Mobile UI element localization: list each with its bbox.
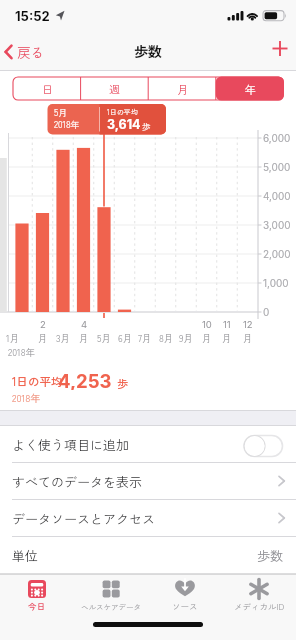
staticText: 月 bbox=[222, 331, 232, 345]
button[interactable] bbox=[238, 430, 288, 460]
button[interactable] bbox=[0, 574, 74, 624]
button[interactable] bbox=[264, 36, 296, 68]
staticText: メディカルID bbox=[234, 600, 285, 612]
staticText: 歩 bbox=[117, 375, 128, 391]
staticText: 11 bbox=[223, 319, 231, 330]
staticText: 月 bbox=[202, 331, 212, 345]
staticText: 2 bbox=[40, 319, 46, 330]
staticText: 10 bbox=[202, 319, 212, 330]
staticText: 今日 bbox=[28, 600, 46, 612]
staticText: 3,614 bbox=[107, 117, 141, 132]
staticText: 月 bbox=[79, 331, 89, 345]
staticText: 5月 bbox=[97, 331, 111, 345]
button[interactable] bbox=[148, 77, 216, 100]
staticText: 週 bbox=[109, 81, 120, 97]
staticText: 7月 bbox=[138, 331, 152, 345]
staticText: 8月 bbox=[159, 331, 174, 345]
staticText: ヘルスケアデータ bbox=[81, 601, 141, 612]
staticText: 歩数 bbox=[134, 41, 162, 61]
button[interactable] bbox=[0, 425, 296, 462]
staticText: 月 bbox=[243, 331, 253, 345]
button[interactable] bbox=[81, 77, 149, 100]
staticText: よく使う項目に追加 bbox=[12, 435, 130, 454]
staticText: 4 bbox=[81, 319, 88, 330]
button[interactable] bbox=[0, 499, 296, 536]
staticText: 2018年 bbox=[8, 345, 35, 359]
button[interactable] bbox=[148, 574, 222, 624]
staticText: 2,000 bbox=[263, 248, 291, 260]
staticText: 1日の平均 bbox=[107, 107, 138, 117]
staticText: 歩数 bbox=[257, 546, 284, 565]
staticText: 5月 bbox=[54, 106, 68, 119]
staticText: すべてのデータを表示 bbox=[12, 472, 143, 491]
staticText: 2018年 bbox=[12, 390, 41, 404]
staticText: 12 bbox=[243, 319, 253, 330]
button[interactable] bbox=[13, 77, 81, 100]
button[interactable] bbox=[216, 77, 284, 100]
staticText: 4,000 bbox=[263, 190, 291, 202]
staticText: 3,000 bbox=[263, 219, 291, 231]
staticText: 5,000 bbox=[263, 161, 291, 173]
staticText: 1,000 bbox=[263, 277, 289, 289]
staticText: 1月 bbox=[6, 331, 20, 345]
staticText: 戻る bbox=[17, 42, 44, 62]
staticText: 日 bbox=[42, 81, 53, 97]
staticText: 6月 bbox=[118, 331, 133, 345]
button[interactable] bbox=[0, 36, 60, 68]
staticText: 15:52 bbox=[15, 8, 50, 24]
staticText: 単位 bbox=[12, 546, 39, 565]
button[interactable] bbox=[74, 574, 148, 624]
staticText: 歩 bbox=[142, 120, 151, 132]
staticText: 9月 bbox=[179, 331, 194, 345]
button[interactable] bbox=[222, 574, 296, 624]
staticText: 月 bbox=[177, 81, 188, 97]
staticText: 3月 bbox=[56, 331, 71, 345]
staticText: 1日の平均 bbox=[12, 373, 63, 390]
staticText: 6,000 bbox=[263, 132, 291, 144]
staticText: 月 bbox=[38, 331, 48, 345]
button[interactable] bbox=[0, 536, 296, 574]
button[interactable] bbox=[0, 462, 296, 499]
staticText: ソース bbox=[172, 600, 198, 612]
staticText: データソースとアクセス bbox=[12, 509, 156, 528]
staticText: 4,253 bbox=[58, 370, 112, 390]
staticText: 年 bbox=[245, 81, 256, 97]
staticText: 2018年 bbox=[54, 118, 80, 131]
staticText: 0 bbox=[263, 306, 270, 318]
